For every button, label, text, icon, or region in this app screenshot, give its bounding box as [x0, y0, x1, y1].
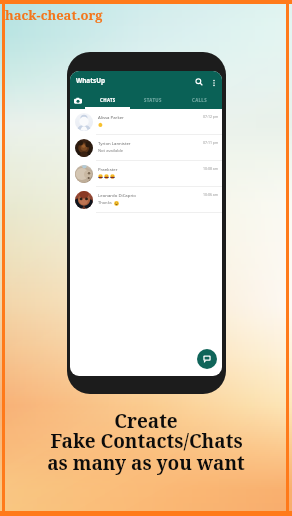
staticText: Fake Contacts/Chats — [50, 428, 243, 454]
button[interactable]: CALLS — [176, 93, 222, 109]
staticText: Tyrion Lannister — [98, 140, 131, 146]
staticText: WhatsUp — [76, 76, 106, 85]
staticText: Create — [114, 408, 178, 434]
button[interactable]: STATUS — [130, 93, 176, 109]
button[interactable]: More options — [207, 76, 220, 89]
button[interactable]: Leonardo DiCaprio — [70, 187, 222, 213]
staticText: Not available — [98, 148, 124, 154]
staticText: CHATS — [100, 97, 116, 103]
staticText: CALLS — [192, 97, 207, 103]
staticText: hack-cheat.org — [5, 6, 103, 24]
button[interactable]: Search — [191, 74, 207, 90]
staticText: 07:11 pm — [203, 140, 219, 145]
staticText: Alissa Parker — [98, 114, 124, 120]
button[interactable]: New chat — [197, 349, 217, 369]
staticText: STATUS — [144, 97, 162, 103]
staticText: as many as you want — [47, 450, 245, 476]
button[interactable]: Prankster — [70, 161, 222, 187]
button[interactable]: Camera — [70, 93, 85, 109]
staticText: 10:06 am — [203, 192, 219, 197]
staticText: 10:08 am — [203, 166, 219, 171]
button[interactable]: Alissa Parker — [70, 109, 222, 135]
staticText: Leonardo DiCaprio — [98, 192, 136, 198]
staticText: 07:12 pm — [203, 114, 219, 119]
button[interactable]: CHATS — [85, 93, 130, 109]
button[interactable]: Tyrion Lannister — [70, 135, 222, 161]
staticText: Thanks — [98, 200, 112, 206]
staticText: Prankster — [98, 166, 118, 172]
